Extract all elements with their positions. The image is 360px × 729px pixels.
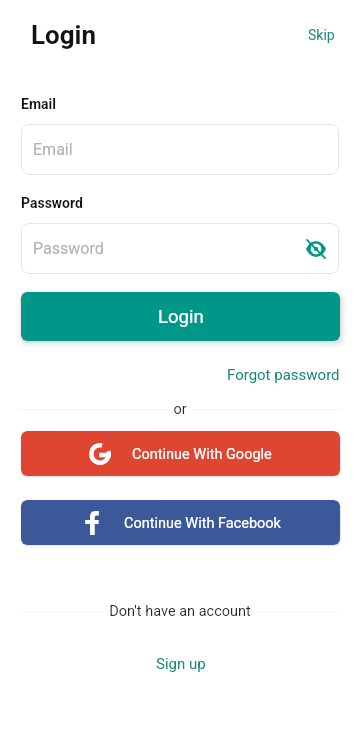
button[interactable]: Email <box>21 124 339 175</box>
staticText: Continue With Facebook <box>124 515 281 532</box>
staticText: Password <box>21 195 83 211</box>
button[interactable]: Toggle password visibility <box>302 235 330 263</box>
button[interactable]: Continue With Facebook <box>21 500 340 545</box>
button[interactable]: Continue With Google <box>21 431 340 476</box>
staticText: Skip <box>308 27 335 43</box>
button[interactable]: Login <box>21 292 340 341</box>
staticText: Don't have an account <box>109 603 251 620</box>
staticText: Login <box>158 306 204 328</box>
staticText: Login <box>31 20 97 50</box>
staticText: Password <box>33 239 104 258</box>
button[interactable]: Sign up <box>142 645 220 683</box>
staticText: Forgot password <box>227 366 340 384</box>
button[interactable]: Forgot password <box>219 358 348 392</box>
staticText: Sign up <box>156 655 206 673</box>
staticText: Email <box>21 96 56 112</box>
button[interactable]: Skip <box>296 17 347 53</box>
button[interactable]: Password <box>21 223 339 274</box>
staticText: or <box>173 401 187 418</box>
staticText: Email <box>33 140 73 159</box>
staticText: Continue With Google <box>132 446 272 463</box>
